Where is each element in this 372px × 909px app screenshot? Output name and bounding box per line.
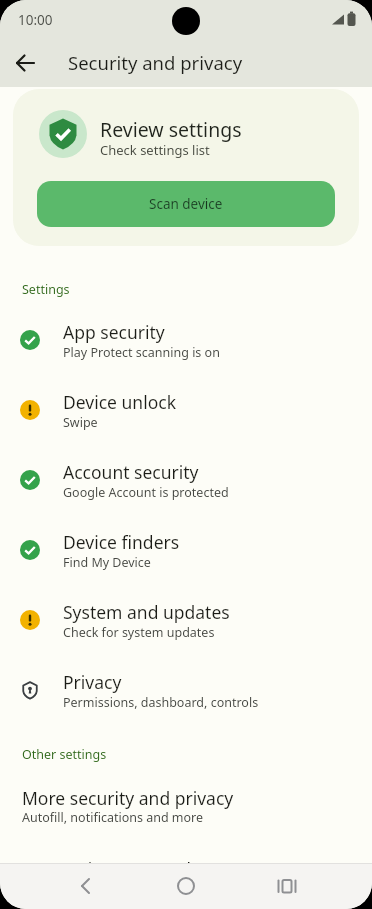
button[interactable]: Privacy [0,656,372,726]
staticText: Device unlock [63,390,176,414]
staticText: 10:00 [18,11,53,29]
staticText: Play Protect scanning is on [63,344,220,361]
staticText: Check settings list [100,141,210,159]
staticText: Autofill, notifications and more [22,809,204,826]
button[interactable]: Device finders [0,516,372,586]
staticText: Swipe [63,414,98,431]
button[interactable] [64,866,104,906]
button[interactable]: Device unlock [0,376,372,446]
staticText: Other settings [22,746,107,763]
staticText: Permissions, dashboard, controls [63,694,259,711]
staticText: More privacy controls [22,857,200,881]
staticText: App security [63,320,165,344]
button[interactable]: App security [0,306,372,376]
staticText: Settings [22,281,70,298]
staticText: Privacy [63,670,122,694]
staticText: Google Account is protected [63,484,229,501]
staticText: Account security [63,460,199,484]
button[interactable]: More security and privacy [0,776,372,838]
staticText: Find My Device [63,554,151,571]
staticText: Check for system updates [63,624,215,641]
staticText: Security and privacy [68,50,243,75]
staticText: Device finders [63,530,180,554]
button[interactable] [166,866,206,906]
staticText: More security and privacy [22,786,234,810]
button[interactable] [267,866,307,906]
button[interactable]: Scan device [37,181,335,227]
button[interactable] [8,45,44,81]
button[interactable]: System and updates [0,586,372,656]
button[interactable]: Account security [0,446,372,516]
staticText: Review settings [100,116,242,143]
staticText: Scan device [149,195,223,213]
staticText: System and updates [63,600,230,624]
